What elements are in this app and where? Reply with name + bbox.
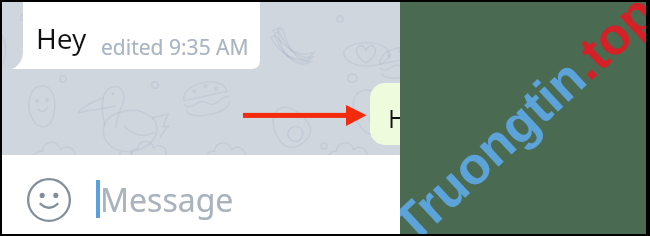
staticText: edited 9:35 AM [101,33,249,62]
staticText: Message [100,178,234,222]
staticText: Hey [388,101,400,135]
staticText: Truongtin [400,48,597,234]
button[interactable]: Hey [370,83,400,145]
button[interactable]: Emoji keyboard [27,178,71,222]
button[interactable]: Hey [10,2,262,69]
button[interactable]: Message [100,174,270,224]
staticText: Hey [36,19,87,57]
staticText: .top [557,2,646,90]
